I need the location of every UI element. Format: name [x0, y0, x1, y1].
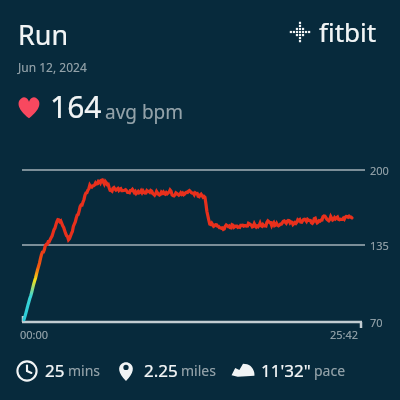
other: Duration	[16, 360, 38, 382]
other: Pace	[230, 357, 256, 383]
staticText: 135	[370, 238, 389, 253]
staticText: Run	[18, 16, 69, 53]
staticText: 70	[370, 315, 383, 330]
staticText: 164	[50, 86, 102, 127]
staticText: 11'32"	[261, 359, 311, 382]
button[interactable]: Duration	[16, 359, 101, 382]
other: Heart rate	[16, 94, 42, 120]
staticText: Jun 12, 2024	[18, 59, 87, 75]
staticText: 00:00	[20, 327, 49, 342]
staticText: miles	[181, 361, 216, 380]
button[interactable]: Pace	[230, 357, 346, 383]
other: Distance	[115, 360, 137, 382]
staticText: 200	[370, 163, 389, 178]
staticText: 25:42	[330, 327, 359, 342]
button[interactable]: fitbit	[286, 14, 377, 49]
staticText: fitbit	[319, 14, 377, 49]
staticText: pace	[314, 361, 346, 380]
staticText: mins	[68, 361, 101, 380]
staticText: avg bpm	[105, 99, 184, 125]
staticText: 25	[45, 359, 65, 382]
button[interactable]: Distance	[115, 359, 216, 382]
staticText: 2.25	[144, 359, 178, 382]
